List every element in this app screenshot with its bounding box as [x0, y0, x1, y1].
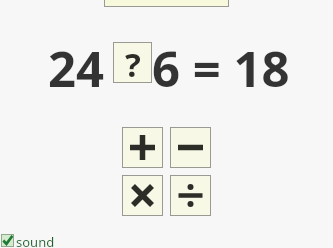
staticText: sound [16, 233, 55, 247]
button[interactable]: Divide [170, 175, 211, 216]
button[interactable]: Score banner [104, 0, 229, 7]
button[interactable]: Unknown operator [113, 42, 152, 83]
button[interactable]: Minus [170, 127, 211, 168]
staticText: 24 [48, 35, 105, 102]
button[interactable]: Multiply [122, 175, 163, 216]
button[interactable]: Plus [122, 127, 163, 168]
staticText: ? [125, 42, 141, 83]
button[interactable]: sound [1, 233, 55, 247]
staticText: 6 = 18 [152, 35, 290, 102]
